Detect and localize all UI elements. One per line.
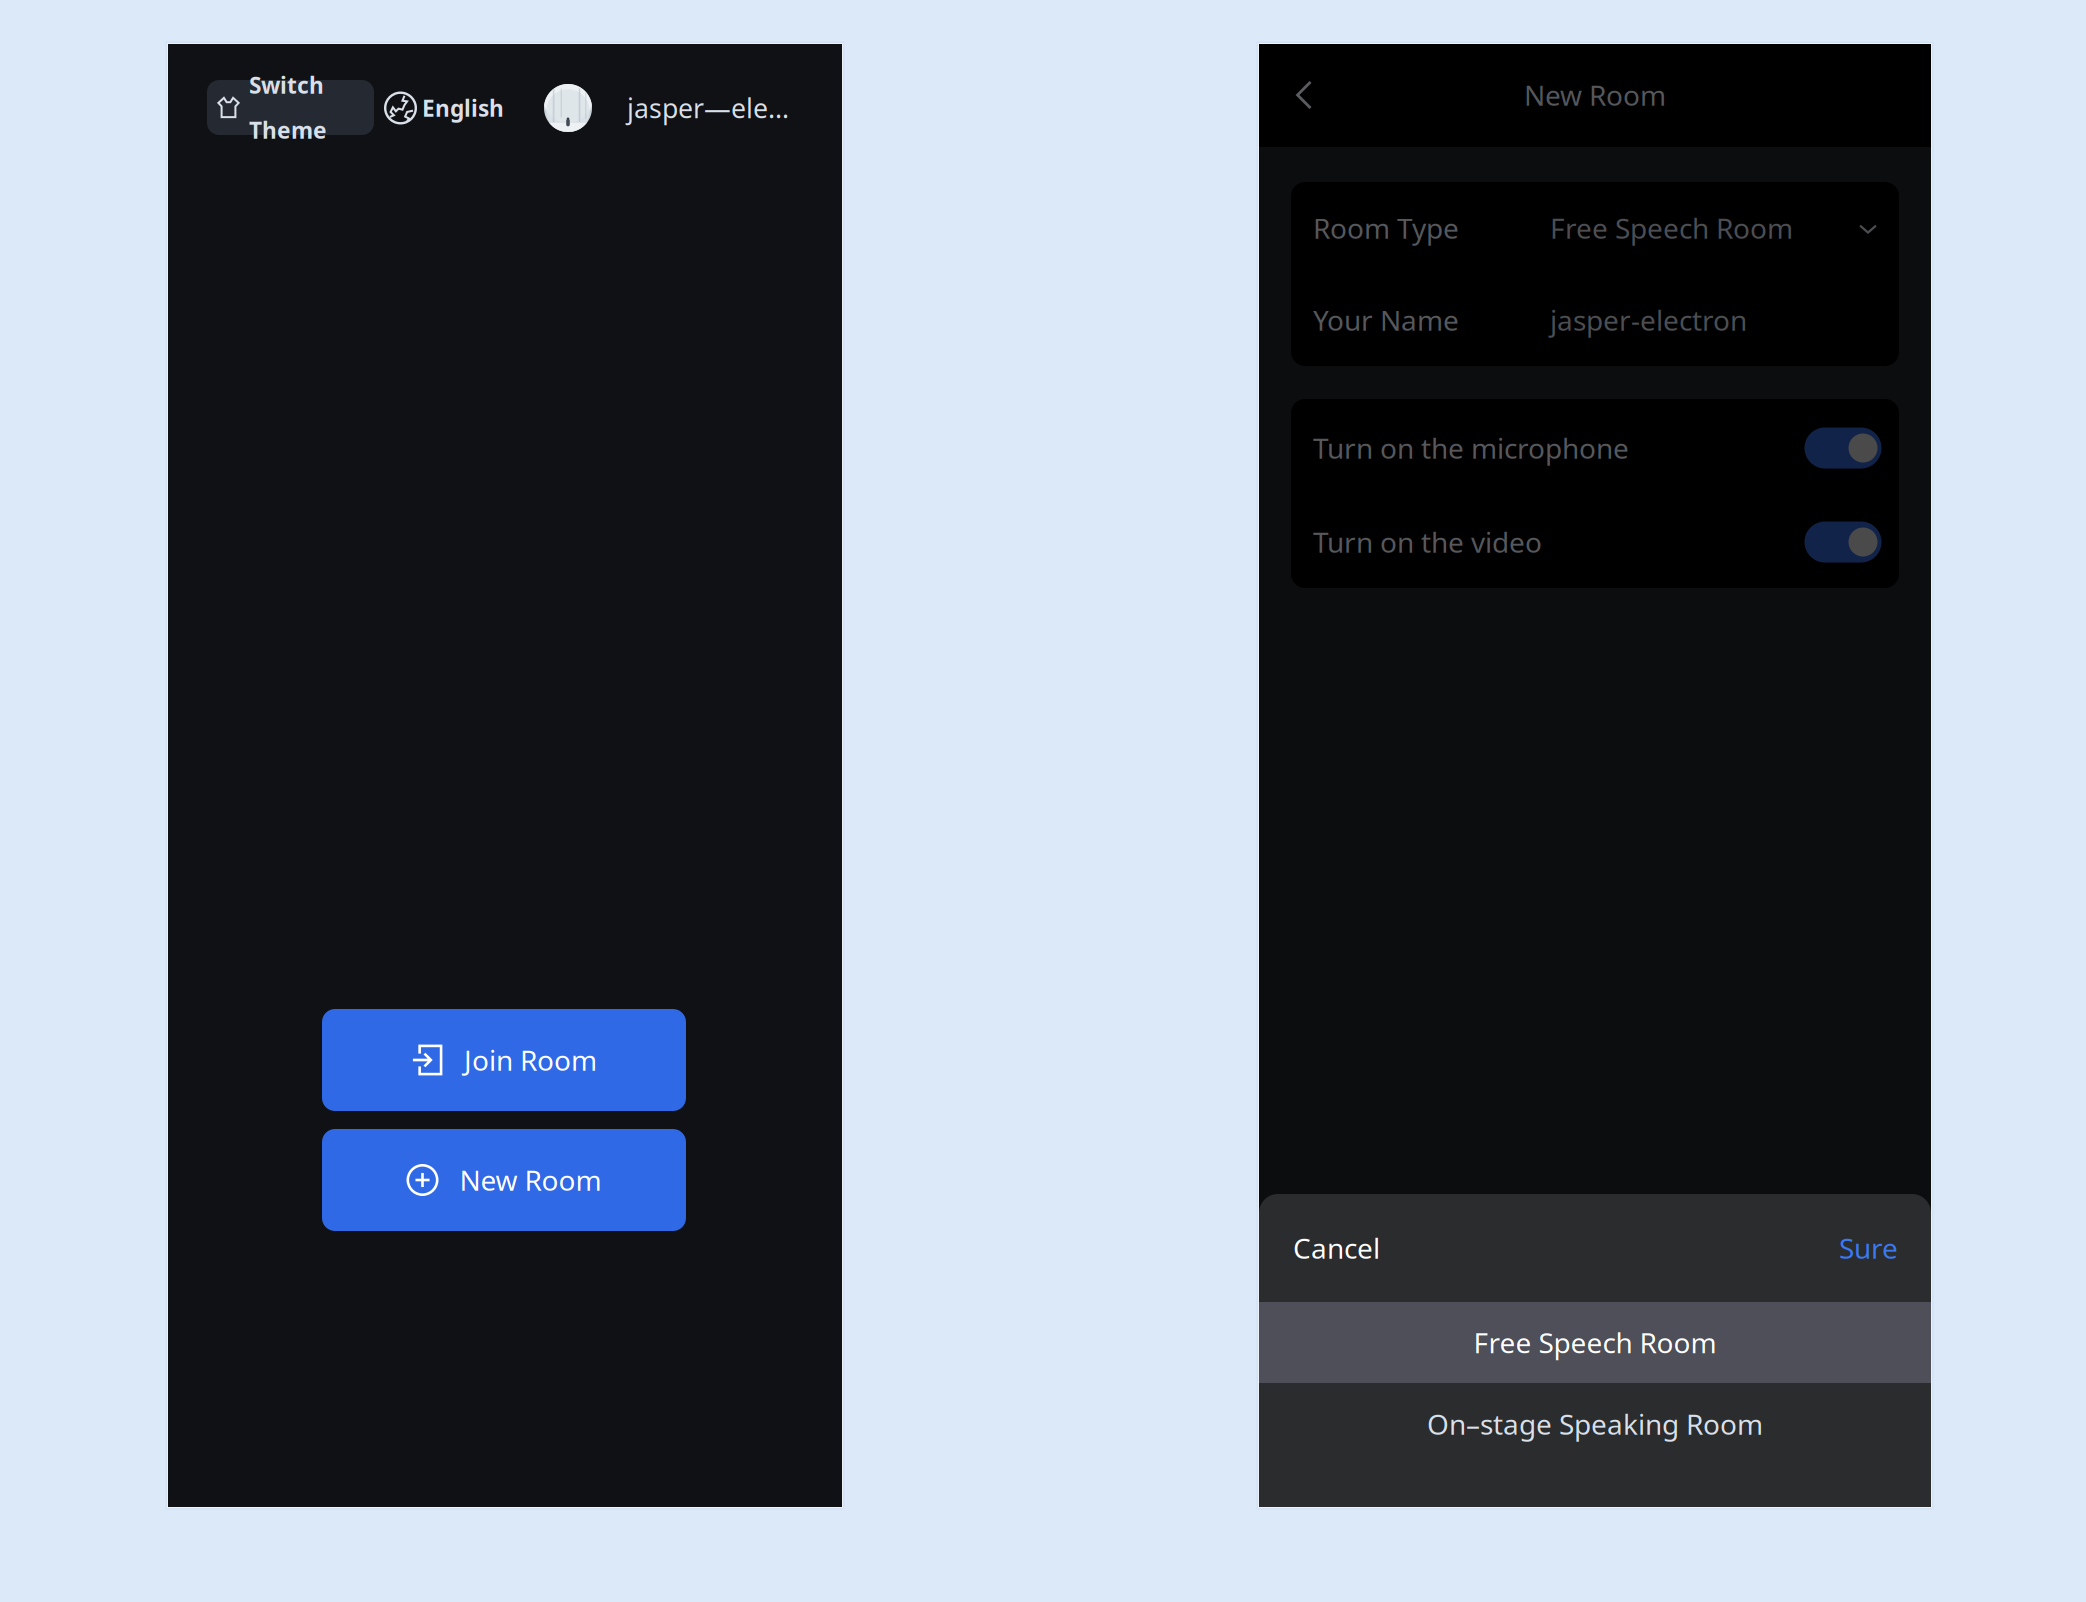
button[interactable]: Switch	[207, 80, 374, 135]
staticText: On–stage Speaking Room	[1427, 1405, 1763, 1443]
button[interactable]: On–stage Speaking Room	[1259, 1383, 1931, 1464]
button[interactable]: Turn on the video	[1291, 495, 1899, 589]
button[interactable]: Free Speech Room	[1259, 1302, 1931, 1383]
button[interactable]: Your Name	[1291, 274, 1899, 366]
staticText: Room Type	[1313, 209, 1459, 247]
button[interactable]: Sure	[1798, 1219, 1898, 1277]
staticText: Theme	[249, 114, 327, 145]
staticText: Join Room	[464, 1041, 597, 1079]
button[interactable]: English	[384, 83, 507, 133]
button[interactable]: Join Room	[322, 1009, 686, 1111]
staticText: jasper—ele…	[627, 90, 789, 126]
staticText: English	[422, 93, 504, 123]
staticText: Free Speech Room	[1473, 1323, 1716, 1361]
button[interactable]: Room Type	[1291, 182, 1899, 274]
button[interactable]: Back	[1277, 68, 1331, 122]
staticText: Switch	[249, 70, 324, 100]
button[interactable]: jasper—ele…	[544, 82, 789, 134]
staticText: Sure	[1839, 1229, 1898, 1267]
staticText: Turn on the microphone	[1313, 429, 1629, 467]
staticText: Cancel	[1293, 1229, 1380, 1267]
staticText: jasper-electron	[1550, 301, 1747, 339]
staticText: Free Speech Room	[1550, 209, 1793, 247]
staticText: Turn on the video	[1313, 523, 1542, 561]
staticText: Your Name	[1313, 301, 1459, 339]
staticText: New Room	[459, 1161, 601, 1199]
button[interactable]: New Room	[322, 1129, 686, 1231]
button[interactable]: Turn on the microphone	[1291, 401, 1899, 495]
staticText: New Room	[1524, 76, 1666, 114]
button[interactable]: Cancel	[1293, 1219, 1413, 1277]
